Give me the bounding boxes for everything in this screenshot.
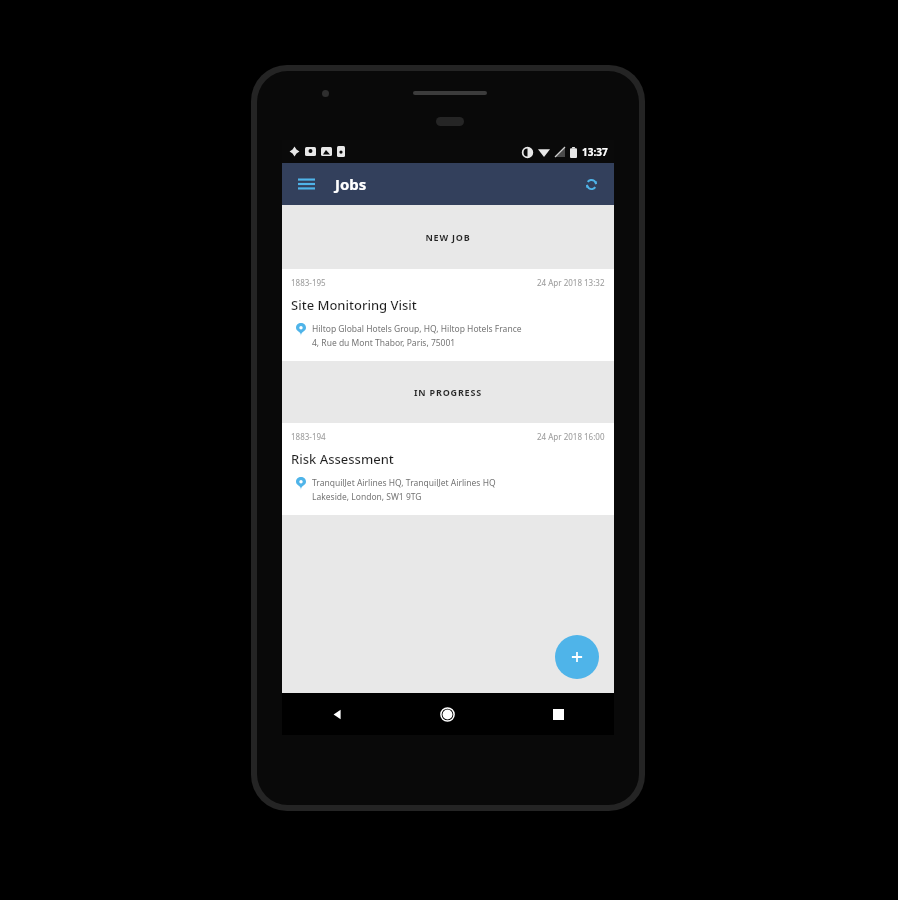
button[interactable]: NEW JOB <box>282 205 614 269</box>
staticText: 24 Apr 2018 13:32 <box>537 277 605 288</box>
staticText: Lakeside, London, SW1 9TG <box>312 491 422 503</box>
button[interactable]: Refresh jobs <box>578 171 604 197</box>
staticText: 13:37 <box>582 145 608 159</box>
button[interactable]: Recent apps <box>503 693 614 735</box>
button[interactable]: Create new job <box>555 635 599 679</box>
staticText: Risk Assessment <box>291 450 394 468</box>
staticText: Site Monitoring Visit <box>291 296 417 314</box>
staticText: 1883-194 <box>291 431 326 442</box>
staticText: Hiltop Global Hotels Group, HQ, Hiltop H… <box>312 323 522 335</box>
button[interactable]: Home <box>392 693 503 735</box>
staticText: Jobs <box>335 174 367 194</box>
button[interactable]: IN PROGRESS <box>282 361 614 423</box>
button[interactable]: Open navigation menu <box>293 171 319 197</box>
staticText: 4, Rue du Mont Thabor, Paris, 75001 <box>312 337 456 349</box>
staticText: IN PROGRESS <box>414 386 482 398</box>
button[interactable]: 1883-194 <box>282 423 614 515</box>
button[interactable]: Back <box>282 693 392 735</box>
button[interactable]: 1883-195 <box>282 269 614 361</box>
staticText: NEW JOB <box>425 231 471 243</box>
staticText: TranquilJet Airlines HQ, TranquilJet Air… <box>312 477 496 489</box>
staticText: 1883-195 <box>291 277 326 288</box>
staticText: 24 Apr 2018 16:00 <box>537 431 605 442</box>
